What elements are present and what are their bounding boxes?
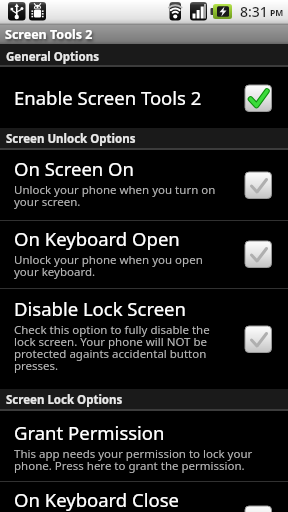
- staticText: On Keyboard Close: [14, 487, 180, 512]
- button[interactable]: [245, 506, 272, 512]
- staticText: Unlock your phone when you turn on your …: [14, 182, 216, 210]
- staticText: Disable Lock Screen: [14, 296, 186, 321]
- button[interactable]: On Keyboard Close: [0, 482, 288, 512]
- staticText: Screen Lock Options: [6, 392, 123, 408]
- staticText: Screen Unlock Options: [6, 131, 136, 147]
- staticText: General Options: [6, 49, 99, 65]
- staticText: Unlock your phone when you open your key…: [14, 252, 203, 280]
- button[interactable]: Grant Permission: [0, 411, 288, 481]
- staticText: 8:31: [240, 2, 268, 21]
- button[interactable]: [245, 326, 272, 353]
- staticText: Grant Permission: [14, 420, 165, 445]
- staticText: On Screen On: [14, 156, 134, 181]
- button[interactable]: [245, 172, 272, 199]
- button[interactable]: [245, 85, 272, 112]
- staticText: PM: [270, 7, 284, 19]
- staticText: On Keyboard Open: [14, 226, 180, 251]
- staticText: This app needs your permission to lock y…: [14, 446, 253, 474]
- button[interactable]: Enable Screen Tools 2: [0, 67, 288, 128]
- staticText: Enable Screen Tools 2: [14, 85, 202, 110]
- button[interactable]: On Screen On: [0, 150, 288, 220]
- button[interactable]: Disable Lock Screen: [0, 289, 288, 389]
- button[interactable]: [245, 241, 272, 268]
- staticText: Check this option to fully disable the l…: [14, 322, 210, 374]
- staticText: Screen Tools 2: [5, 26, 93, 43]
- button[interactable]: On Keyboard Open: [0, 221, 288, 288]
